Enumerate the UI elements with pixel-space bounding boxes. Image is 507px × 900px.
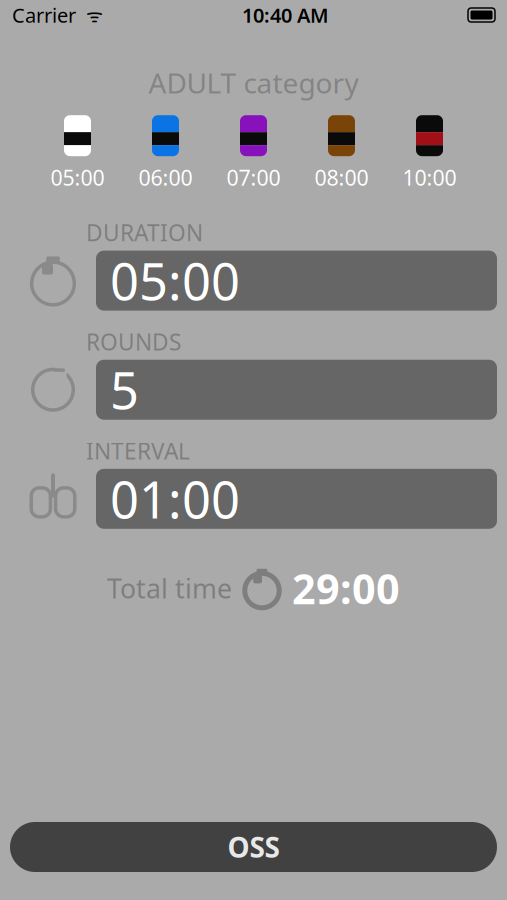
- button[interactable]: 06:00: [121, 115, 209, 191]
- staticText: 06:00: [138, 163, 192, 191]
- staticText: Total time: [107, 571, 232, 606]
- staticText: OSS: [227, 828, 279, 866]
- staticText: DURATION: [86, 217, 203, 248]
- staticText: 5: [110, 356, 139, 423]
- button[interactable]: 07:00: [209, 115, 297, 191]
- staticText: 07:00: [226, 163, 280, 191]
- staticText: ROUNDS: [86, 327, 181, 357]
- staticText: 01:00: [110, 465, 240, 532]
- button[interactable]: 5: [96, 360, 497, 420]
- staticText: ADULT category: [148, 64, 358, 101]
- staticText: 10:00: [402, 163, 456, 191]
- button[interactable]: 05:00: [33, 115, 121, 191]
- button[interactable]: 05:00: [96, 251, 497, 311]
- button[interactable]: 01:00: [96, 469, 497, 529]
- staticText: 05:00: [50, 163, 104, 191]
- button[interactable]: 10:00: [385, 115, 473, 191]
- staticText: 08:00: [314, 163, 368, 191]
- staticText: 05:00: [110, 247, 240, 314]
- staticText: Carrier: [12, 2, 76, 28]
- staticText: INTERVAL: [86, 436, 190, 466]
- staticText: 29:00: [292, 561, 400, 616]
- staticText: ᯤ: [76, 3, 103, 27]
- button[interactable]: OSS: [10, 822, 497, 872]
- button[interactable]: 08:00: [297, 115, 385, 191]
- staticText: 10:40 AM: [242, 2, 329, 28]
